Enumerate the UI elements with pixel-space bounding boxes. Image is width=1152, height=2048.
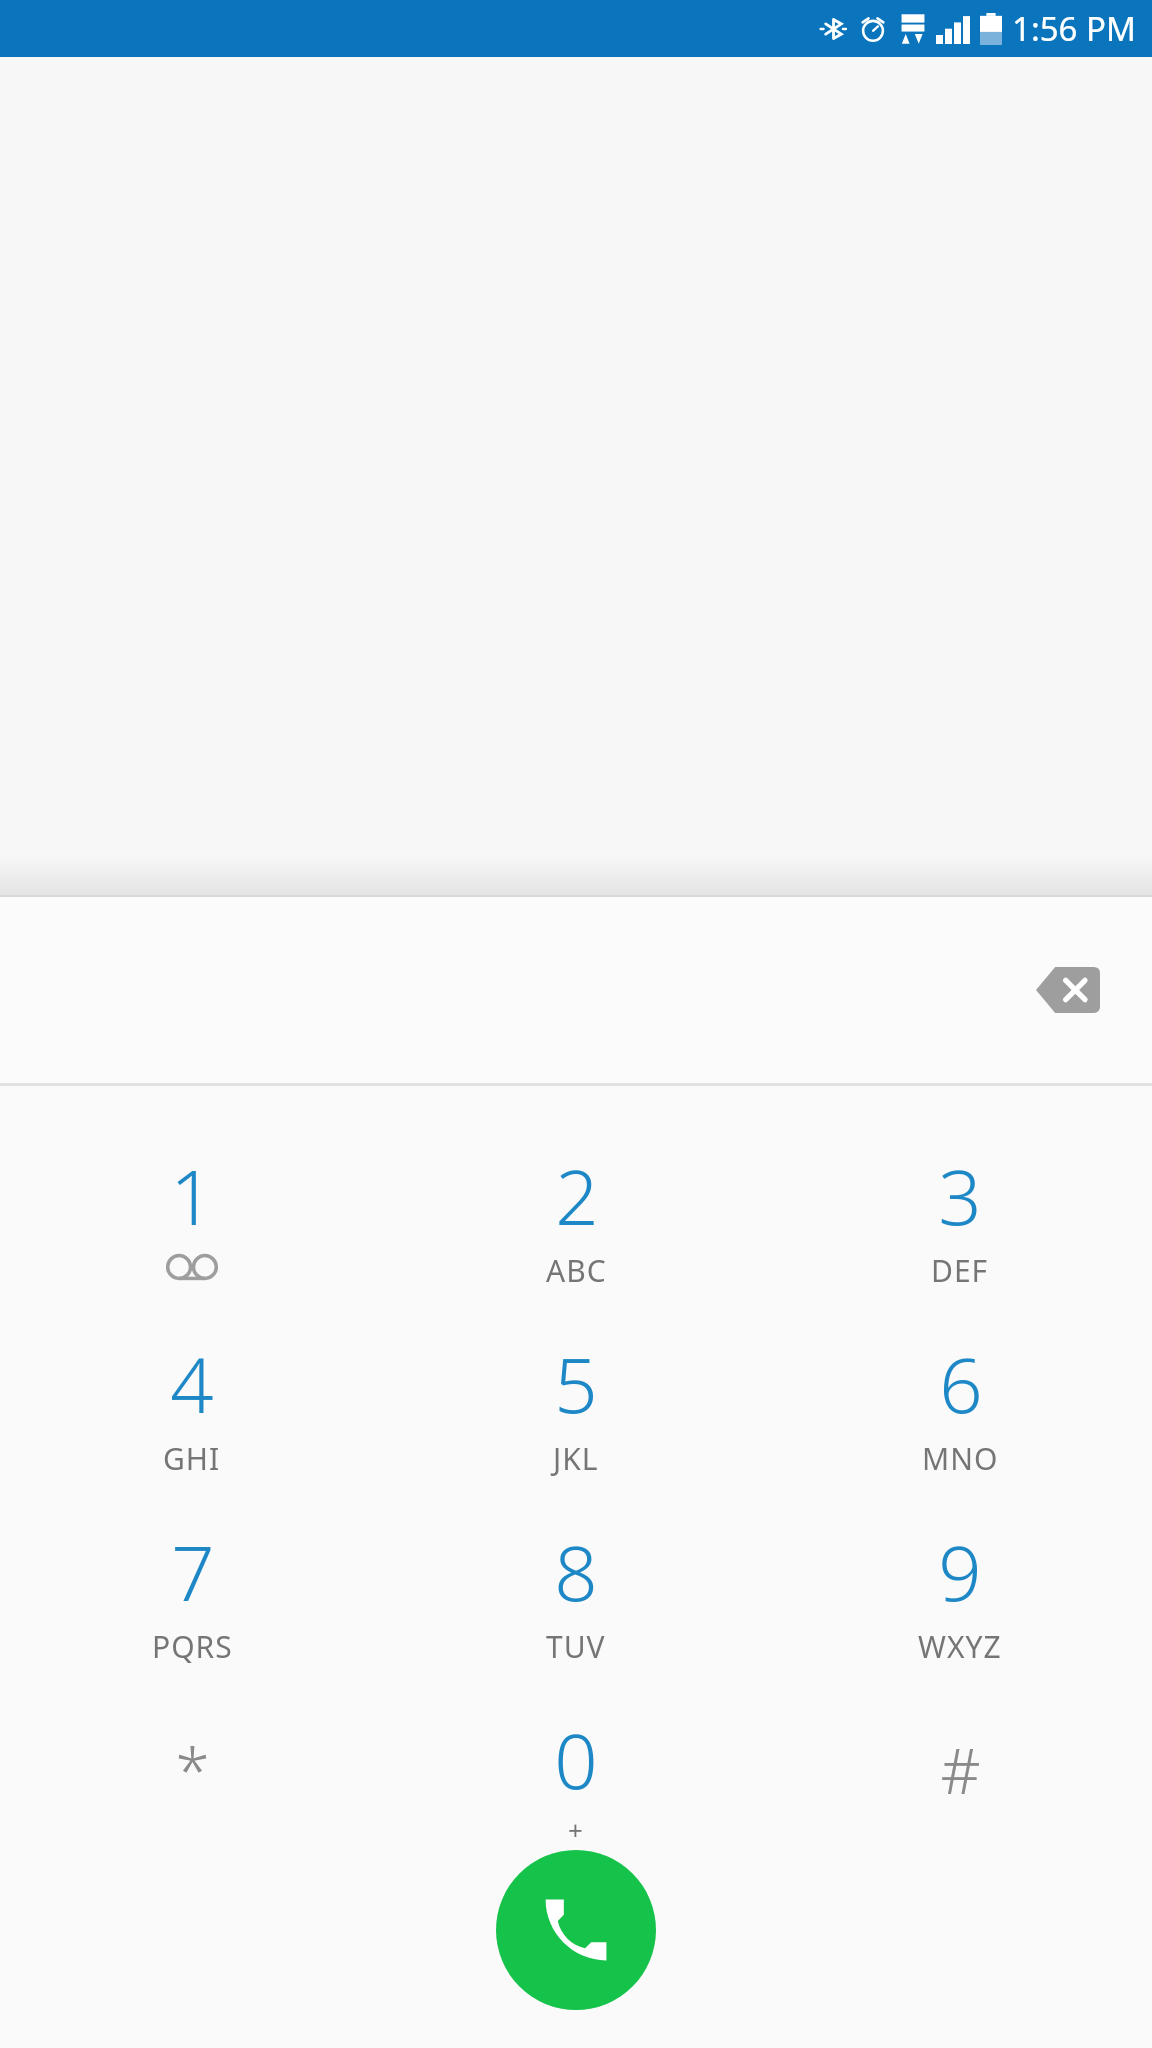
button[interactable]: 3 xyxy=(768,1140,1152,1328)
staticText: 6 xyxy=(939,1332,983,1436)
staticText: 0 xyxy=(554,1708,598,1812)
staticText: PQRS xyxy=(152,1626,233,1667)
staticText: JKL xyxy=(553,1438,599,1479)
staticText: 3 xyxy=(938,1144,982,1248)
staticText: 7 xyxy=(171,1520,215,1624)
staticText: GHI xyxy=(163,1438,221,1479)
staticText: * xyxy=(175,1728,210,1812)
staticText: 9 xyxy=(938,1520,982,1624)
button[interactable]: 6 xyxy=(768,1328,1152,1516)
button[interactable]: 4 xyxy=(0,1328,384,1516)
staticText: MNO xyxy=(922,1438,999,1479)
staticText: 4 xyxy=(170,1332,214,1436)
staticText: 8 xyxy=(554,1520,598,1624)
button[interactable]: 9 xyxy=(768,1516,1152,1704)
button[interactable]: 0 xyxy=(384,1704,768,1892)
button[interactable]: 8 xyxy=(384,1516,768,1704)
staticText: 1 xyxy=(170,1144,214,1248)
staticText: + xyxy=(568,1812,584,1847)
button[interactable]: * xyxy=(0,1704,384,1892)
button[interactable]: Call xyxy=(496,1850,656,2010)
button[interactable]: 5 xyxy=(384,1328,768,1516)
button[interactable]: 2 xyxy=(384,1140,768,1328)
staticText: ABC xyxy=(546,1250,607,1291)
staticText: DEF xyxy=(931,1250,989,1291)
button[interactable]: # xyxy=(768,1704,1152,1892)
staticText: WXYZ xyxy=(918,1626,1002,1667)
staticText: 5 xyxy=(554,1332,598,1436)
button[interactable]: 7 xyxy=(0,1516,384,1704)
button[interactable]: Backspace xyxy=(1008,935,1128,1045)
staticText: 2 xyxy=(555,1144,599,1248)
staticText: 1:56 PM xyxy=(1012,6,1136,51)
staticText: # xyxy=(940,1728,981,1812)
staticText: TUV xyxy=(546,1626,606,1667)
button[interactable]: 1 xyxy=(0,1140,384,1328)
